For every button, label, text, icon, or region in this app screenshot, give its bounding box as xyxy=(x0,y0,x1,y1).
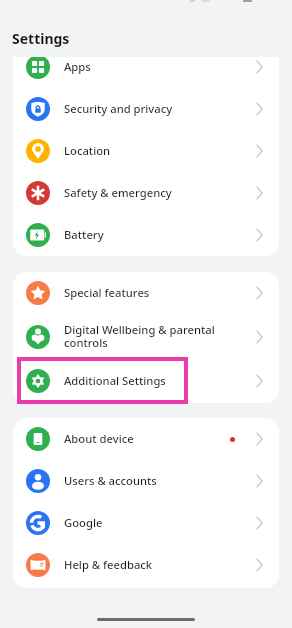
button[interactable]: Additional Settings xyxy=(13,360,279,402)
button[interactable]: Safety & emergency xyxy=(13,172,279,214)
button[interactable]: Users & accounts xyxy=(13,460,279,502)
staticText: Special features xyxy=(64,285,250,300)
staticText: Apps xyxy=(64,59,250,74)
staticText: Location xyxy=(64,143,250,158)
button[interactable]: Apps xyxy=(13,46,279,88)
staticText: Settings xyxy=(12,29,70,48)
staticText: Additional Settings xyxy=(64,373,250,388)
staticText: Safety & emergency xyxy=(64,185,250,200)
button[interactable]: Battery xyxy=(13,214,279,256)
staticText: Google xyxy=(64,515,250,530)
button[interactable]: Security and privacy xyxy=(13,88,279,130)
staticText: Security and privacy xyxy=(64,101,250,116)
staticText: About device xyxy=(64,431,224,446)
button[interactable]: Digital Wellbeing & parental controls xyxy=(13,314,279,360)
button[interactable]: About device xyxy=(13,418,279,460)
button[interactable]: Location xyxy=(13,130,279,172)
button[interactable]: Special features xyxy=(13,272,279,314)
staticText: Digital Wellbeing & parental controls xyxy=(64,322,250,350)
staticText: Users & accounts xyxy=(64,473,250,488)
staticText: Help & feedback xyxy=(64,557,250,572)
button[interactable]: Help & feedback xyxy=(13,544,279,586)
staticText: Battery xyxy=(64,227,250,242)
button[interactable]: Google xyxy=(13,502,279,544)
